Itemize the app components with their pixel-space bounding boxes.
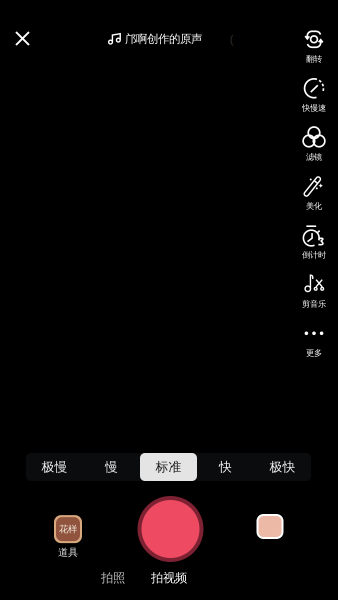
staticText: 倒计时 [302, 250, 326, 260]
staticText: 翻转 [306, 54, 322, 64]
staticText: 美化 [306, 201, 322, 211]
button[interactable]: 花样 [38, 515, 98, 559]
staticText: 邝啊创作的原声 [125, 32, 202, 46]
staticText: ( [230, 31, 234, 47]
button[interactable]: Shutter [137, 496, 203, 562]
staticText: 极慢 [41, 459, 67, 475]
button[interactable]: Open album [248, 504, 292, 548]
button[interactable]: 剪音乐 [292, 267, 336, 316]
staticText: 拍照 [101, 570, 125, 586]
staticText: 快慢速 [302, 103, 326, 113]
button[interactable]: 慢 [83, 453, 140, 481]
button[interactable]: 标准 [140, 453, 197, 481]
staticText: 快 [219, 459, 232, 475]
staticText: 花样 [59, 523, 77, 535]
staticText: 慢 [105, 459, 118, 475]
button[interactable]: 快慢速 [292, 71, 336, 120]
staticText: 道具 [58, 546, 78, 559]
button[interactable]: 极慢 [26, 453, 83, 481]
button[interactable]: 拍视频 [142, 564, 196, 592]
staticText: 剪音乐 [302, 299, 326, 309]
button[interactable]: 快 [197, 453, 254, 481]
staticText: 极快 [269, 459, 295, 475]
button[interactable]: 极快 [254, 453, 311, 481]
button[interactable]: 滤镜 [292, 120, 336, 169]
button[interactable]: 邝啊创作的原声 [108, 24, 234, 54]
button[interactable]: 美化 [292, 169, 336, 218]
button[interactable]: 拍照 [86, 564, 140, 592]
staticText: 标准 [155, 459, 181, 475]
staticText: 拍视频 [151, 570, 187, 586]
staticText: 更多 [306, 348, 322, 358]
button[interactable]: 更多 [292, 316, 336, 365]
button[interactable]: 翻转 [292, 22, 336, 71]
button[interactable]: 倒计时 [292, 218, 336, 267]
staticText: 滤镜 [306, 152, 322, 162]
button[interactable]: Close [2, 18, 42, 58]
